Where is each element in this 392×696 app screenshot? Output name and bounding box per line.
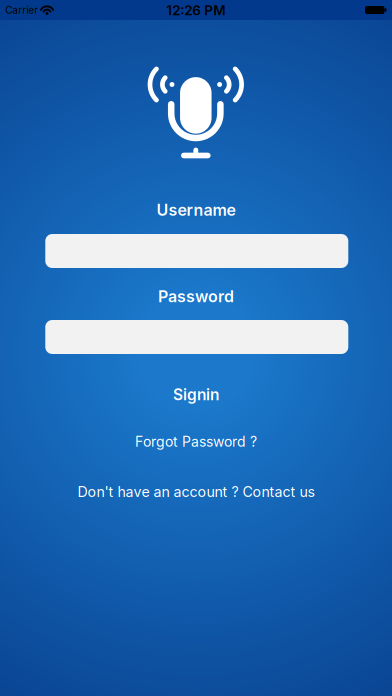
button[interactable]: Forgot Password ? [135,433,257,450]
staticText: Forgot Password ? [135,433,257,450]
staticText: 12:26 PM [166,2,225,19]
button[interactable]: Don't have an account ? Contact us [77,483,314,500]
staticText: Don't have an account ? Contact us [77,483,314,500]
staticText: Username [156,200,235,220]
staticText: Signin [173,385,219,404]
staticText: Carrier [5,4,38,16]
staticText: Password [158,287,234,306]
button[interactable]: Signin [173,385,219,404]
